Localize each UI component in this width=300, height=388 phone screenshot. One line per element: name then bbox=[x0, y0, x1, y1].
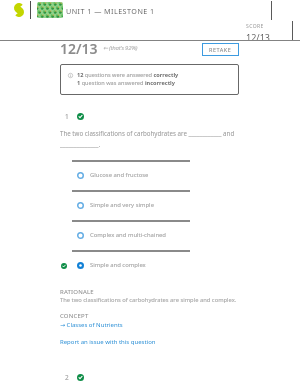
staticText: 12/13 bbox=[60, 39, 98, 58]
staticText: UNIT 1 — MILESTONE 1 bbox=[66, 6, 155, 16]
staticText: The two classifications of carbohydrates… bbox=[60, 129, 235, 148]
button[interactable]: Simple and very simple bbox=[58, 193, 198, 218]
staticText: 1 bbox=[65, 112, 69, 121]
button[interactable]: Report an issue with this question bbox=[60, 338, 156, 346]
staticText: The two classifications of carbohydrates… bbox=[60, 296, 237, 304]
staticText: → Classes of Nutrients bbox=[60, 321, 123, 329]
staticText: 12/13 bbox=[246, 31, 270, 43]
staticText: RETAKE bbox=[209, 46, 232, 53]
staticText: Simple and very simple bbox=[90, 201, 154, 209]
staticText: Report an issue with this question bbox=[60, 338, 156, 346]
button[interactable]: → Classes of Nutrients bbox=[60, 321, 123, 329]
staticText: Complex and multi-chained bbox=[90, 231, 166, 239]
button[interactable]: Complex and multi-chained bbox=[58, 223, 198, 248]
staticText: CONCEPT bbox=[60, 312, 89, 320]
staticText: 12 questions were answered correctly bbox=[77, 71, 179, 79]
button[interactable]: Simple and complex bbox=[58, 253, 198, 278]
staticText: ← (that's 92%) bbox=[103, 44, 138, 52]
staticText: Glucose and fructose bbox=[90, 171, 149, 179]
staticText: Simple and complex bbox=[90, 261, 146, 269]
staticText: SCORE bbox=[246, 23, 264, 30]
staticText: 2 bbox=[65, 373, 69, 382]
staticText: RATIONALE bbox=[60, 288, 94, 296]
button[interactable]: RETAKE bbox=[202, 43, 239, 56]
staticText: 1 question was answered incorrectly bbox=[77, 79, 175, 87]
button[interactable]: Glucose and fructose bbox=[58, 163, 198, 188]
